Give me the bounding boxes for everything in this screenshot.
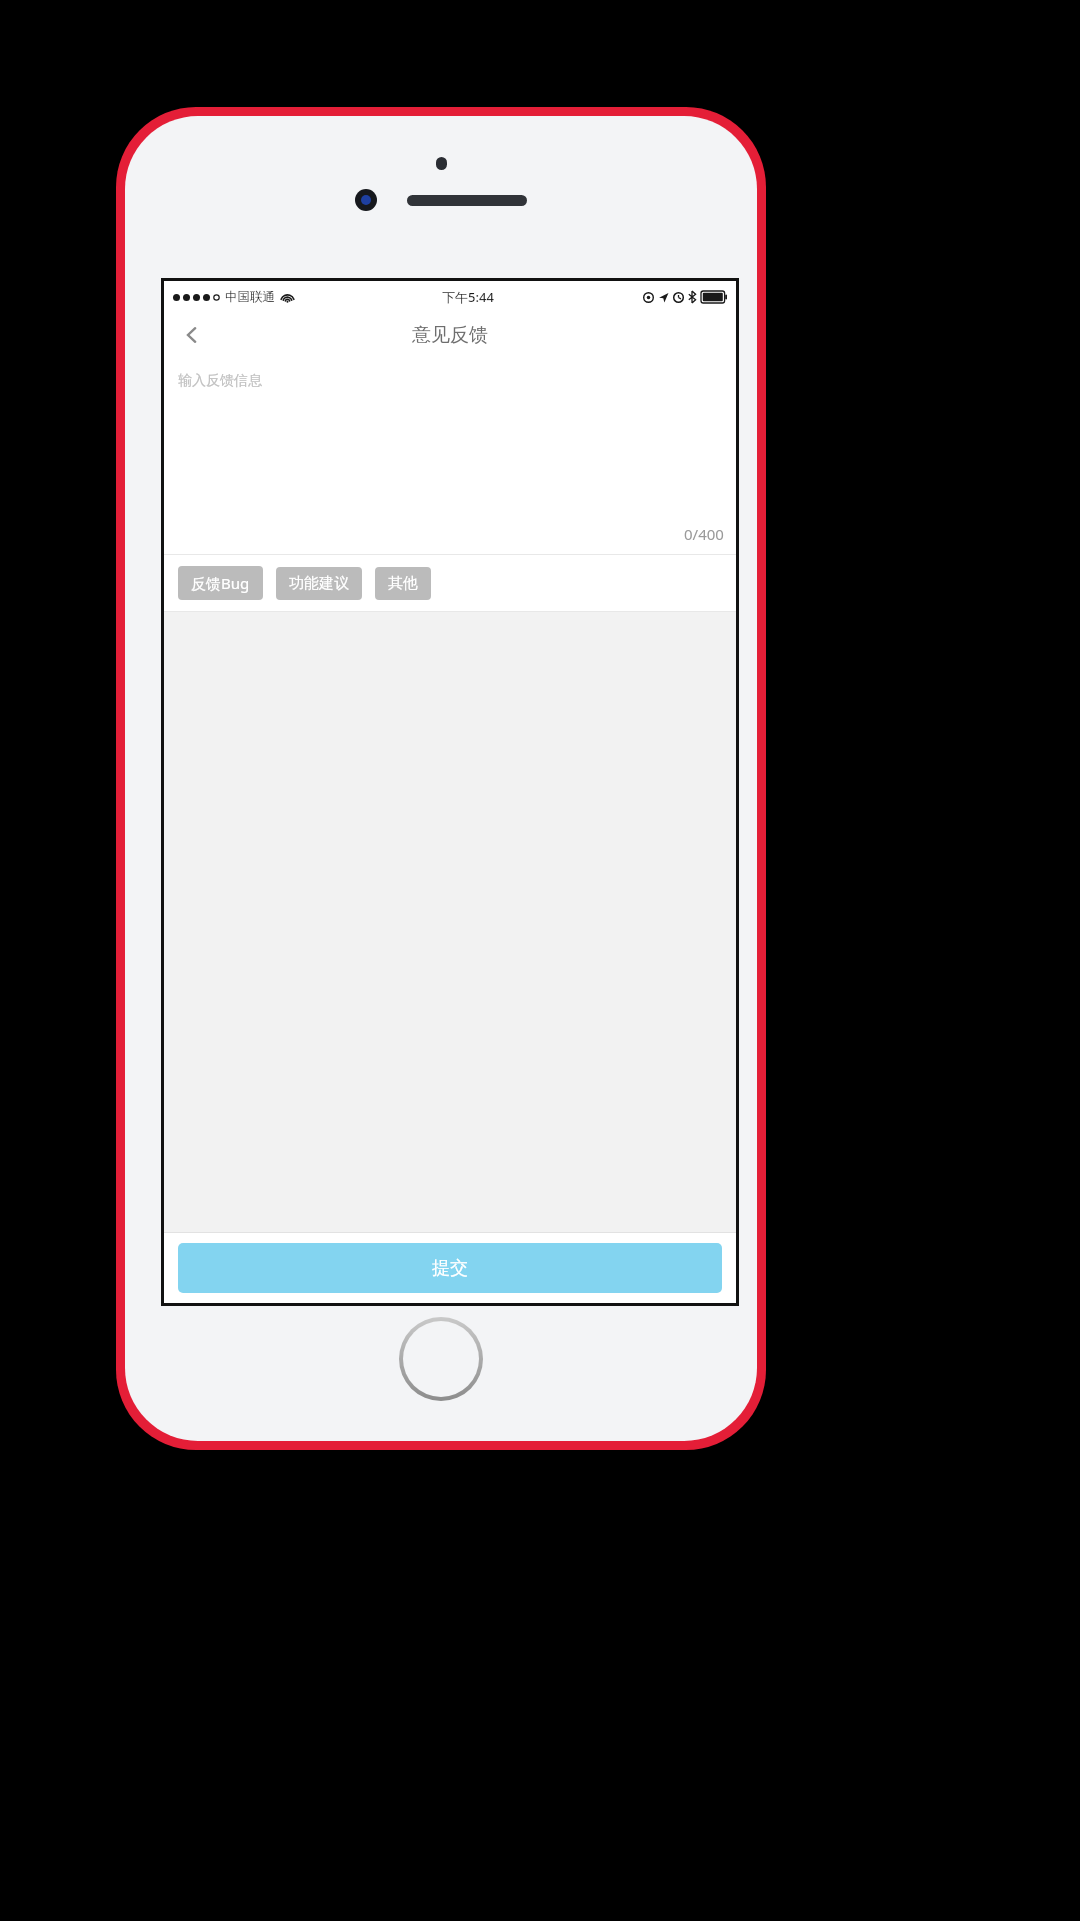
- staticText: 0/400: [684, 524, 724, 544]
- staticText: 功能建议: [289, 574, 349, 593]
- staticText: 意见反馈: [412, 323, 488, 347]
- button[interactable]: Back: [170, 313, 214, 357]
- staticText: 反馈Bug: [191, 573, 250, 593]
- staticText: 下午5:44: [442, 288, 494, 306]
- staticText: 其他: [388, 574, 418, 593]
- staticText: 提交: [432, 1257, 468, 1280]
- staticText: 中国联通: [225, 289, 275, 305]
- button[interactable]: 输入反馈信息: [164, 358, 736, 554]
- button[interactable]: 反馈Bug: [178, 566, 263, 600]
- button[interactable]: 提交: [178, 1243, 722, 1293]
- button[interactable]: 功能建议: [276, 567, 362, 600]
- button[interactable]: 其他: [375, 567, 431, 600]
- staticText: 输入反馈信息: [178, 372, 262, 390]
